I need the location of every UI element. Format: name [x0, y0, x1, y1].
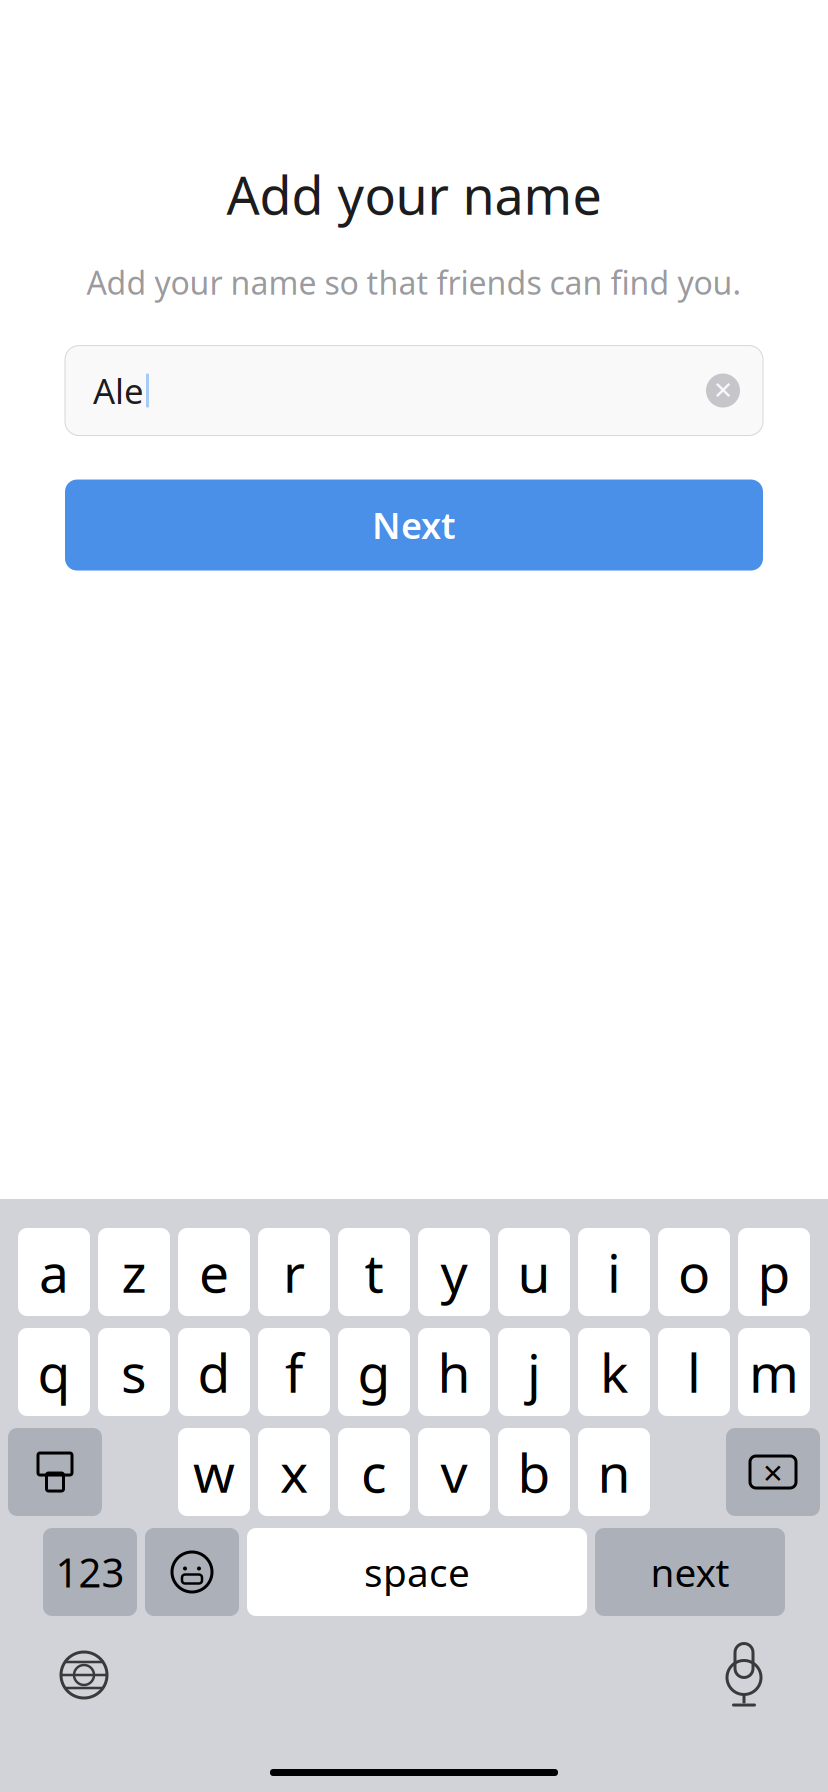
- staticText: g: [357, 1337, 390, 1407]
- button[interactable]: Delete: [726, 1428, 820, 1516]
- button[interactable]: d: [178, 1328, 250, 1416]
- staticText: q: [37, 1337, 70, 1407]
- staticText: e: [199, 1237, 229, 1307]
- staticText: v: [440, 1437, 467, 1507]
- staticText: j: [527, 1337, 541, 1407]
- button[interactable]: Shift: [8, 1428, 102, 1516]
- button[interactable]: b: [498, 1428, 570, 1516]
- staticText: x: [280, 1437, 308, 1507]
- button[interactable]: Dictate: [704, 1640, 784, 1710]
- staticText: o: [678, 1237, 710, 1307]
- staticText: b: [517, 1437, 550, 1507]
- staticText: d: [197, 1337, 230, 1407]
- button[interactable]: s: [98, 1328, 170, 1416]
- button[interactable]: o: [658, 1228, 730, 1316]
- button[interactable]: h: [418, 1328, 490, 1416]
- button[interactable]: Ale: [65, 345, 763, 435]
- staticText: z: [121, 1237, 146, 1307]
- staticText: Add your name: [226, 160, 601, 229]
- button[interactable]: f: [258, 1328, 330, 1416]
- staticText: ×: [763, 1449, 783, 1495]
- button[interactable]: c: [338, 1428, 410, 1516]
- staticText: k: [600, 1337, 628, 1407]
- staticText: ✕: [713, 377, 733, 404]
- button[interactable]: l: [658, 1328, 730, 1416]
- button[interactable]: p: [738, 1228, 810, 1316]
- button[interactable]: j: [498, 1328, 570, 1416]
- button[interactable]: Next keyboard: [44, 1640, 124, 1710]
- button[interactable]: a: [18, 1228, 90, 1316]
- button[interactable]: q: [18, 1328, 90, 1416]
- button[interactable]: 123: [43, 1528, 137, 1616]
- button[interactable]: next: [595, 1528, 785, 1616]
- button[interactable]: t: [338, 1228, 410, 1316]
- button[interactable]: w: [178, 1428, 250, 1516]
- button[interactable]: x: [258, 1428, 330, 1516]
- button[interactable]: Emoji: [145, 1528, 239, 1616]
- staticText: Ale: [93, 367, 144, 413]
- staticText: y: [440, 1237, 467, 1307]
- staticText: m: [749, 1337, 799, 1407]
- staticText: w: [193, 1437, 235, 1507]
- staticText: p: [757, 1237, 790, 1307]
- staticText: Next: [372, 501, 456, 549]
- staticText: h: [437, 1337, 470, 1407]
- staticText: a: [39, 1237, 69, 1307]
- button[interactable]: y: [418, 1228, 490, 1316]
- staticText: space: [364, 1546, 470, 1598]
- button[interactable]: e: [178, 1228, 250, 1316]
- staticText: u: [517, 1237, 550, 1307]
- button[interactable]: n: [578, 1428, 650, 1516]
- staticText: l: [687, 1337, 701, 1407]
- staticText: r: [283, 1237, 305, 1307]
- button[interactable]: m: [738, 1328, 810, 1416]
- button[interactable]: u: [498, 1228, 570, 1316]
- staticText: i: [607, 1237, 621, 1307]
- button[interactable]: z: [98, 1228, 170, 1316]
- staticText: 123: [55, 1545, 124, 1598]
- staticText: c: [361, 1437, 387, 1507]
- button[interactable]: Next: [65, 479, 763, 570]
- staticText: Add your name so that friends can find y…: [86, 261, 741, 304]
- button[interactable]: g: [338, 1328, 410, 1416]
- button[interactable]: i: [578, 1228, 650, 1316]
- button[interactable]: k: [578, 1328, 650, 1416]
- staticText: t: [364, 1237, 383, 1307]
- staticText: s: [121, 1337, 147, 1407]
- button[interactable]: r: [258, 1228, 330, 1316]
- staticText: f: [285, 1337, 303, 1407]
- staticText: n: [597, 1437, 630, 1507]
- button[interactable]: v: [418, 1428, 490, 1516]
- button[interactable]: space: [247, 1528, 587, 1616]
- staticText: next: [650, 1546, 729, 1598]
- button[interactable]: Clear text: [695, 362, 751, 418]
